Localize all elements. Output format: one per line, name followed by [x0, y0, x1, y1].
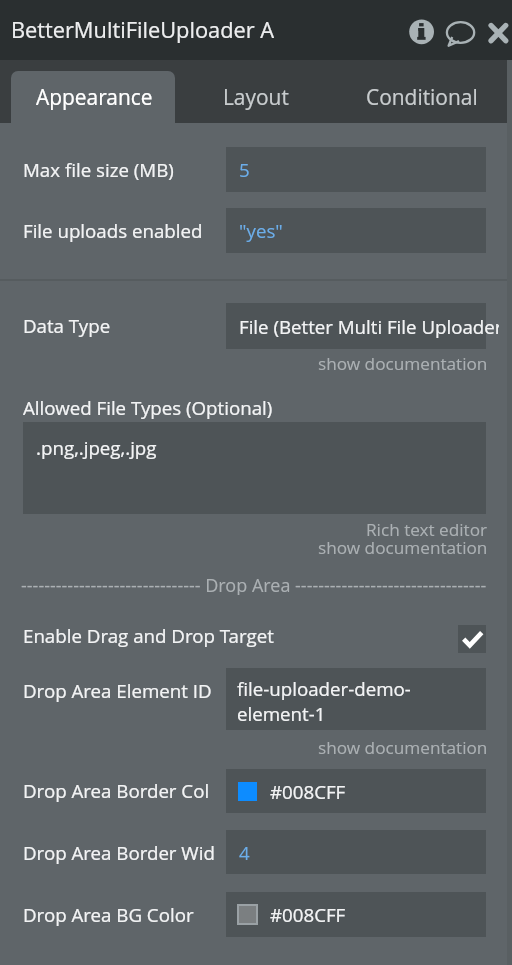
button[interactable]: Layout	[175, 60, 336, 123]
button[interactable]: show documentation	[300, 536, 488, 559]
staticText: #008CFF	[270, 902, 346, 927]
staticText: Layout	[223, 83, 289, 111]
button[interactable]: .png,.jpeg,.jpg	[23, 422, 486, 514]
button[interactable]: 5	[226, 147, 486, 192]
staticText: Drop Area BG Color	[23, 902, 194, 927]
staticText: Data Type	[23, 313, 111, 338]
button[interactable]: show documentation	[300, 352, 488, 375]
button[interactable]: Appearance	[11, 71, 175, 123]
button[interactable]: Enable Drag and Drop Target	[0, 612, 512, 662]
button[interactable]: show documentation	[300, 736, 488, 759]
button[interactable]: "yes"	[226, 208, 486, 253]
button[interactable]: #008CFF	[226, 892, 486, 937]
staticText: Enable Drag and Drop Target	[23, 623, 274, 648]
button[interactable]: Close	[482, 14, 512, 44]
staticText: File (Better Multi File Uploader)	[239, 314, 499, 339]
staticText: Conditional	[366, 83, 478, 111]
staticText: BetterMultiFileUploader A	[11, 15, 275, 45]
staticText: Rich text editor	[366, 518, 488, 541]
button[interactable]: file-uploader-demo-element-1	[226, 668, 486, 730]
staticText: Drop Area Element ID	[23, 678, 212, 703]
button[interactable]: Information	[404, 14, 440, 50]
staticText: show documentation	[318, 352, 488, 375]
staticText: #008CFF	[270, 779, 346, 804]
staticText: Drop Area Border Wid	[23, 840, 215, 865]
staticText: Max file size (MB)	[23, 157, 174, 182]
staticText: Allowed File Types (Optional)	[23, 395, 273, 420]
staticText: show documentation	[318, 536, 488, 559]
staticText: ------------------------------- Drop Are…	[21, 573, 487, 595]
staticText: "yes"	[239, 218, 283, 243]
staticText: file-uploader-demo-element-1	[237, 676, 497, 726]
button[interactable]: 4	[226, 830, 486, 874]
staticText: .png,.jpeg,.jpg	[36, 435, 157, 460]
staticText: show documentation	[318, 736, 488, 759]
staticText: 5	[239, 157, 250, 182]
staticText: Appearance	[36, 83, 153, 111]
button[interactable]: File (Better Multi File Uploader)	[226, 303, 486, 349]
button[interactable]: Comment	[444, 14, 480, 50]
button[interactable]: #008CFF	[226, 769, 486, 813]
staticText: File uploads enabled	[23, 218, 203, 243]
button[interactable]: Rich text editor	[300, 518, 488, 541]
staticText: Drop Area Border Col	[23, 778, 210, 803]
button[interactable]: Conditional	[339, 60, 504, 123]
staticText: 4	[239, 840, 250, 865]
